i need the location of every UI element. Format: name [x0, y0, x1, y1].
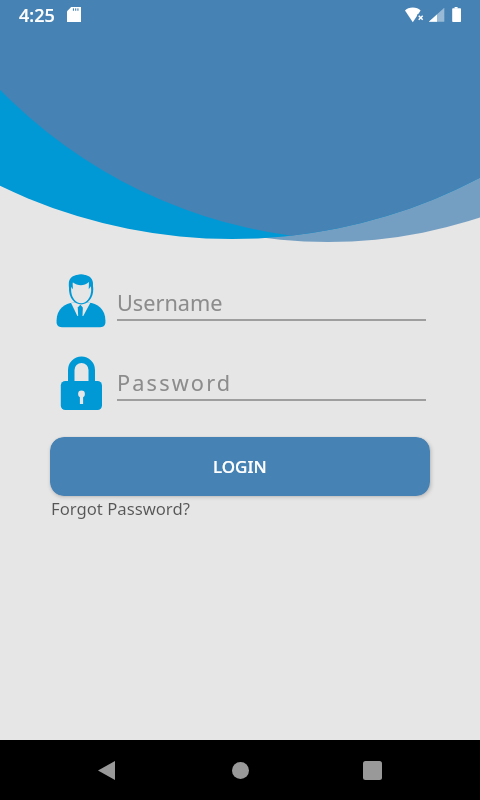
button[interactable]: Recent apps	[342, 750, 402, 790]
staticText: Username	[117, 288, 223, 318]
other: Password	[60, 355, 103, 411]
button[interactable]: Back	[76, 750, 136, 790]
button[interactable]: LOGIN	[50, 437, 430, 496]
staticText: LOGIN	[213, 455, 267, 478]
other: User	[56, 274, 106, 329]
button[interactable]: Home	[210, 750, 270, 790]
staticText: Password	[117, 368, 233, 398]
button[interactable]: Forgot Password?	[51, 497, 190, 520]
staticText: 4:25	[19, 3, 55, 28]
staticText: Forgot Password?	[51, 497, 190, 520]
